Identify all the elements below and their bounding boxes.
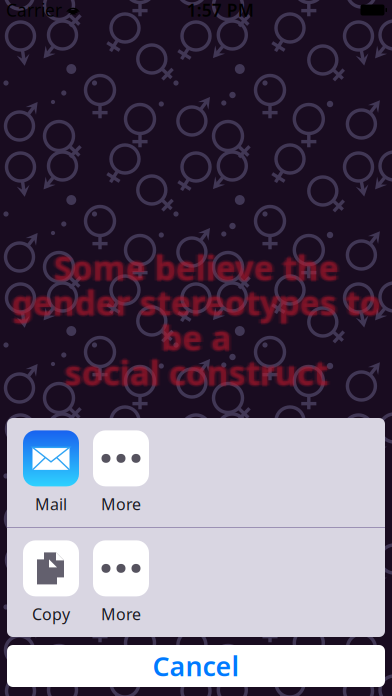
staticText: Cancel	[152, 648, 239, 684]
staticText: social construct	[66, 350, 329, 395]
staticText: gender stereotypes to	[14, 280, 383, 325]
staticText: 1:57 PM	[187, 0, 254, 21]
button[interactable]: More	[93, 430, 149, 515]
staticText: Copy	[32, 603, 70, 625]
staticText: be a	[158, 315, 228, 360]
staticText: social construct	[67, 350, 330, 395]
staticText: More	[101, 493, 141, 515]
button[interactable]: Copy	[23, 540, 79, 625]
staticText: be a	[163, 315, 233, 360]
staticText: Some believe the	[53, 244, 338, 288]
staticText: social construct	[64, 352, 327, 396]
staticText: Some believe the	[52, 245, 337, 290]
button[interactable]: Cancel	[7, 645, 385, 687]
staticText: Some believe the	[53, 245, 338, 290]
staticText: be a	[159, 315, 229, 360]
staticText: Some believe the	[55, 245, 340, 290]
staticText: gender stereotypes to	[11, 282, 380, 326]
staticText: Some believe the	[53, 247, 338, 291]
staticText: Some believe the	[50, 245, 335, 290]
staticText: gender stereotypes to	[8, 280, 377, 325]
button[interactable]: More	[93, 540, 149, 625]
staticText: be a	[164, 315, 234, 360]
staticText: gender stereotypes to	[10, 280, 379, 325]
staticText: be a	[161, 317, 231, 361]
staticText: gender stereotypes to	[11, 280, 380, 325]
staticText: More	[101, 603, 141, 625]
staticText: social construct	[64, 349, 327, 393]
staticText: Mail	[35, 493, 67, 515]
staticText: social construct	[61, 350, 324, 395]
staticText: be a	[161, 315, 231, 360]
staticText: Some believe the	[56, 245, 341, 290]
staticText: social construct	[64, 350, 327, 395]
staticText: gender stereotypes to	[11, 279, 380, 323]
staticText: Carrier	[6, 0, 62, 21]
staticText: be a	[161, 314, 231, 358]
staticText: social construct	[63, 350, 326, 395]
staticText: gender stereotypes to	[13, 280, 382, 325]
button[interactable]: Mail	[23, 430, 79, 515]
